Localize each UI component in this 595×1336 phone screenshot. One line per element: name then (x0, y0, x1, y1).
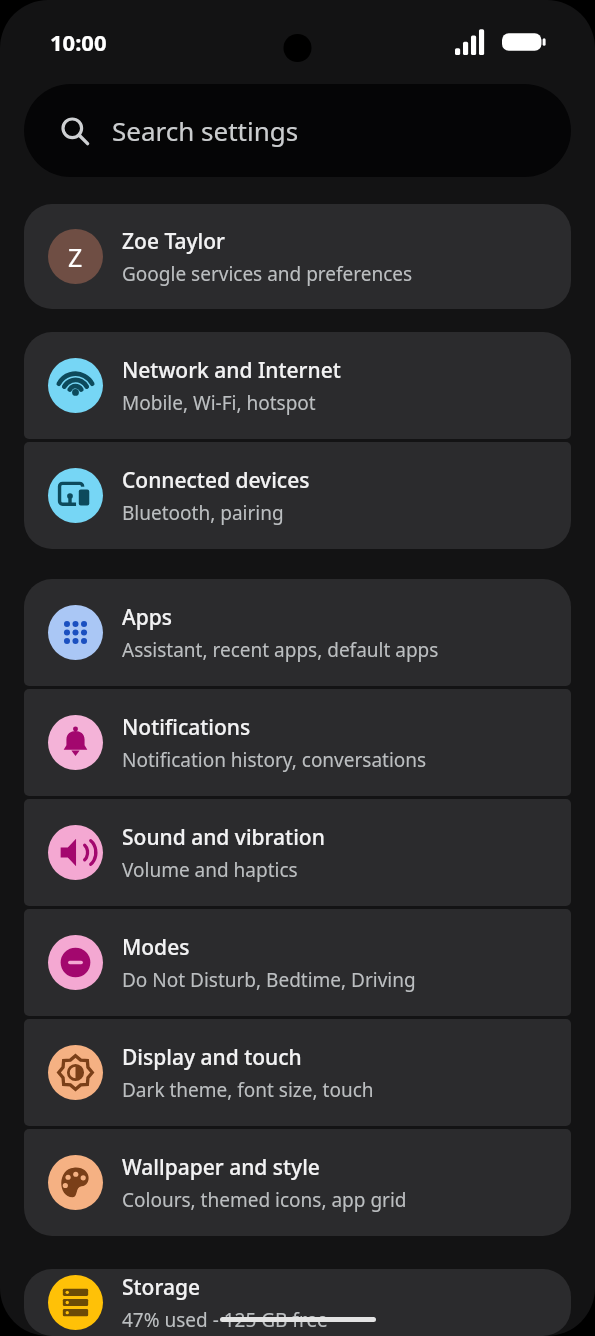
other: Search (60, 116, 90, 146)
button[interactable]: Sound and vibration (24, 799, 571, 906)
button[interactable]: Network and Internet (24, 332, 571, 439)
button[interactable]: Display and touch (24, 1019, 571, 1126)
staticText: Assistant, recent apps, default apps (122, 637, 439, 663)
staticText: Volume and haptics (122, 857, 298, 883)
button[interactable]: Wallpaper and style (24, 1129, 571, 1236)
staticText: Storage (122, 1273, 200, 1302)
staticText: Modes (122, 933, 190, 962)
staticText: Display and touch (122, 1043, 302, 1072)
staticText: Colours, themed icons, app grid (122, 1187, 407, 1213)
staticText: Bluetooth, pairing (122, 500, 284, 526)
staticText: Wallpaper and style (122, 1153, 320, 1182)
staticText: Google services and preferences (122, 261, 413, 287)
staticText: Apps (122, 603, 173, 632)
staticText: 10:00 (50, 27, 107, 57)
button[interactable]: Apps (24, 579, 571, 686)
button[interactable]: Storage (24, 1269, 571, 1336)
staticText: 47% used - 125 GB free (122, 1307, 328, 1333)
button[interactable]: Connected devices (24, 442, 571, 549)
staticText: Notification history, conversations (122, 747, 427, 773)
button[interactable]: Notifications (24, 689, 571, 796)
staticText: Notifications (122, 713, 251, 742)
staticText: Do Not Disturb, Bedtime, Driving (122, 967, 416, 993)
staticText: Network and Internet (122, 356, 341, 385)
button[interactable]: Z (24, 204, 571, 309)
button[interactable]: Search (24, 84, 571, 177)
staticText: Sound and vibration (122, 823, 325, 852)
staticText: Dark theme, font size, touch (122, 1077, 374, 1103)
staticText: Zoe Taylor (122, 227, 226, 256)
button[interactable]: Modes (24, 909, 571, 1016)
staticText: Search settings (112, 113, 299, 148)
staticText: Connected devices (122, 466, 310, 495)
staticText: Z (68, 240, 83, 274)
staticText: Mobile, Wi-Fi, hotspot (122, 390, 316, 416)
